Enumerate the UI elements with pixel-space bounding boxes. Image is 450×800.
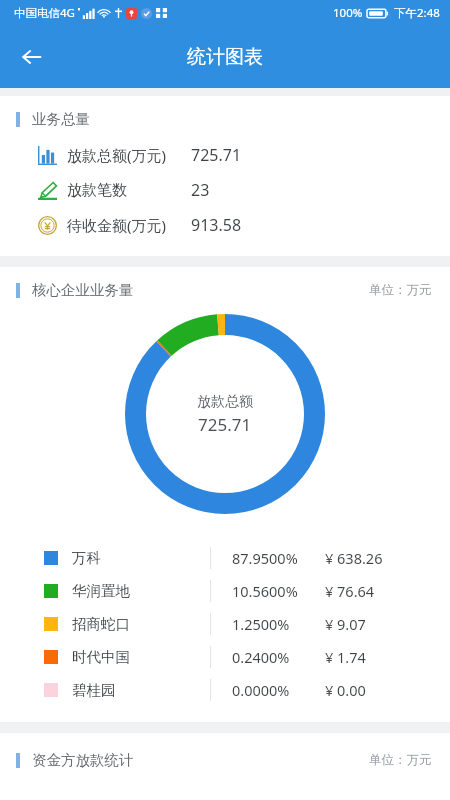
staticText: 招商蛇口 [72, 615, 130, 633]
staticText: 0.0000% [232, 680, 290, 700]
button[interactable]: Back [8, 33, 56, 81]
staticText: 核心企业业务量 [32, 281, 134, 299]
staticText: ¥ 638.26 [325, 548, 383, 568]
staticText: 放款笔数 [67, 181, 127, 200]
staticText: 单位：万元 [369, 752, 432, 768]
staticText: 0.2400% [232, 647, 290, 667]
staticText: 725.71 [198, 413, 252, 436]
button[interactable]: 万科 [0, 541, 450, 574]
staticText: ¥ 9.07 [325, 614, 366, 634]
button[interactable]: 待收金额(万元) [0, 214, 450, 236]
staticText: 放款总额 [197, 393, 253, 411]
button[interactable]: 招商蛇口 [0, 607, 450, 640]
staticText: ¥ 1.74 [325, 647, 366, 667]
staticText: 单位：万元 [369, 282, 432, 298]
staticText: ¥ 0.00 [325, 680, 366, 700]
staticText: 业务总量 [32, 110, 90, 128]
staticText: 725.71 [191, 144, 242, 166]
staticText: 913.58 [191, 214, 242, 236]
button[interactable]: 碧桂园 [0, 673, 450, 706]
staticText: 100% [333, 5, 363, 21]
staticText: 时代中国 [72, 648, 130, 666]
staticText: 中国电信4G [14, 5, 75, 21]
staticText: 10.5600% [232, 581, 298, 601]
button[interactable]: 时代中国 [0, 640, 450, 673]
button[interactable]: 放款笔数 [0, 179, 450, 201]
staticText: 统计图表 [187, 45, 263, 69]
staticText: 1.2500% [232, 614, 290, 634]
staticText: 华润置地 [72, 582, 130, 600]
staticText: ¥ 76.64 [325, 581, 375, 601]
staticText: 待收金额(万元) [67, 215, 167, 235]
staticText: 资金方放款统计 [32, 751, 134, 769]
staticText: 碧桂园 [72, 681, 116, 699]
staticText: 87.9500% [232, 548, 298, 568]
button[interactable]: 华润置地 [0, 574, 450, 607]
staticText: 下午2:48 [394, 5, 440, 21]
button[interactable]: 放款总额(万元) [0, 144, 450, 166]
staticText: 23 [191, 179, 210, 201]
staticText: 放款总额(万元) [67, 145, 167, 165]
staticText: 万科 [72, 549, 101, 567]
